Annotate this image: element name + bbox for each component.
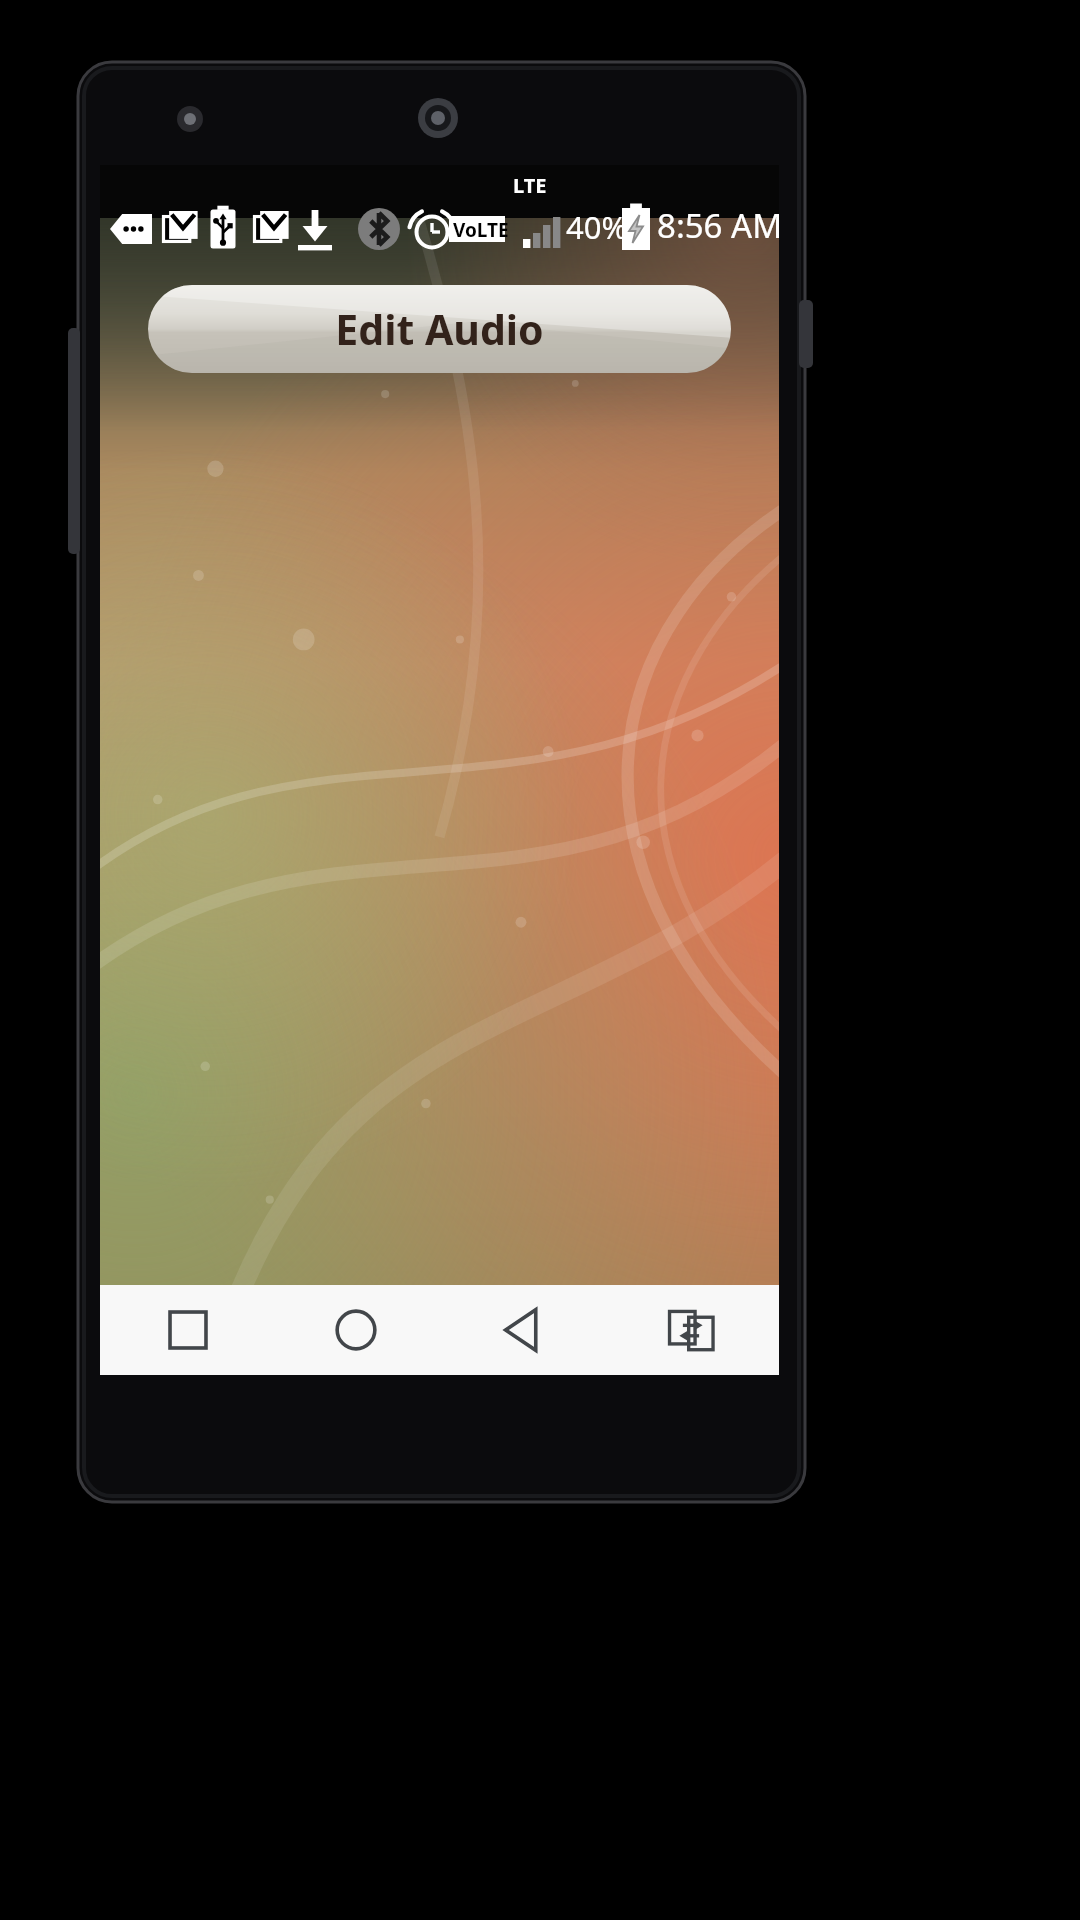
staticText: LTE [513,172,547,199]
staticText: VoLTE [453,217,509,243]
button[interactable]: Home [276,1285,436,1375]
staticText: 8:56 AM [657,203,783,248]
staticText: Edit Audio [335,301,544,357]
button[interactable]: Edit Audio [148,285,731,373]
button[interactable]: Recents [108,1285,268,1375]
staticText: 40% [566,206,628,248]
button[interactable]: Switch app [611,1285,771,1375]
button[interactable]: Back [443,1285,603,1375]
